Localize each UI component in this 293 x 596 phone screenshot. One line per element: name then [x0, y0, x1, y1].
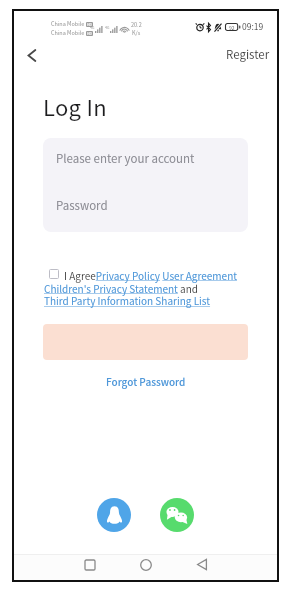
staticText: 4G — [105, 25, 110, 30]
staticText: HD — [87, 31, 92, 36]
staticText: 09:19 — [242, 20, 264, 32]
staticText: China Mobile — [51, 29, 85, 37]
staticText: HD — [87, 22, 92, 27]
staticText: Password — [56, 197, 108, 214]
staticText: 20.2 — [131, 21, 142, 29]
staticText: Please enter your account — [56, 150, 195, 167]
button[interactable]: Back — [187, 557, 217, 572]
button[interactable]: Log in with WeChat — [160, 498, 194, 532]
button[interactable]: Back — [17, 40, 47, 70]
staticText: Log In — [43, 90, 107, 122]
staticText: 92 — [229, 24, 235, 31]
staticText: K/s — [132, 29, 141, 37]
button[interactable]: Log in with QQ — [97, 498, 131, 532]
button[interactable]: Password — [43, 185, 248, 232]
staticText: China Mobile — [51, 20, 85, 28]
button[interactable]: Recent apps — [75, 557, 105, 572]
button[interactable]: Forgot Password — [100, 371, 192, 391]
button[interactable]: Please enter your account — [43, 138, 248, 185]
button[interactable]: Register — [217, 39, 279, 70]
button[interactable]: Home — [131, 557, 161, 572]
staticText: I AgreePrivacy Policy User Agreement — [64, 268, 238, 282]
button[interactable]: Agree to terms — [49, 269, 59, 279]
staticText: Children's Privacy Statement and Third P… — [44, 281, 211, 308]
staticText: Register — [226, 46, 270, 63]
staticText: Forgot Password — [106, 374, 186, 388]
staticText: 4G — [90, 25, 95, 30]
